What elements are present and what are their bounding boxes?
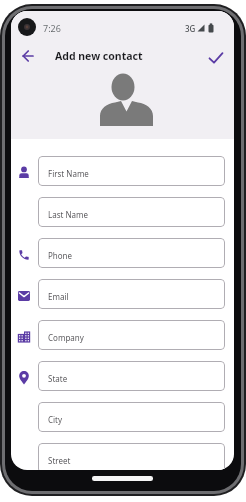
staticText: Email — [48, 291, 69, 302]
staticText: First Name — [48, 168, 89, 179]
staticText: Company — [48, 332, 84, 343]
button[interactable]: Phone — [38, 238, 225, 268]
staticText: Add new contact — [55, 49, 143, 63]
button[interactable]: Email — [38, 279, 225, 309]
button[interactable] — [85, 70, 161, 139]
button[interactable]: Last Name — [38, 197, 225, 227]
button[interactable]: State — [38, 361, 225, 391]
staticText: City — [48, 414, 63, 425]
staticText: 3G — [185, 23, 196, 34]
staticText: Phone — [48, 250, 73, 261]
staticText: State — [48, 373, 68, 384]
staticText: Last Name — [48, 209, 89, 220]
button[interactable]: Company — [38, 320, 225, 350]
staticText: 7:26 — [43, 22, 61, 34]
button[interactable]: Street — [38, 443, 225, 470]
button[interactable]: City — [38, 402, 225, 432]
button[interactable] — [20, 48, 36, 64]
staticText: Street — [48, 455, 71, 466]
button[interactable] — [207, 50, 225, 66]
button[interactable]: First Name — [38, 156, 225, 186]
